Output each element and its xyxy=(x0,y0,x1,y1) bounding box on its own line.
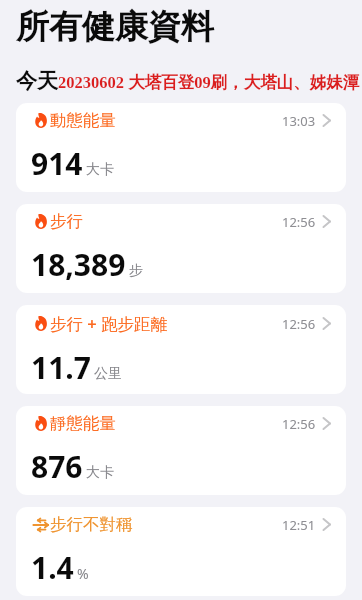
button[interactable]: 步行 xyxy=(16,204,346,293)
staticText: 步行不對稱 xyxy=(50,514,133,535)
button[interactable]: 步行 + 跑步距離 xyxy=(16,305,346,394)
staticText: 公里 xyxy=(94,365,122,383)
staticText: 大卡 xyxy=(86,464,114,482)
staticText: 20230602 大塔百登09刷，大塔山、姊妹潭 xyxy=(58,72,360,93)
staticText: 12:56 xyxy=(282,415,316,433)
button[interactable]: 動態能量 xyxy=(16,103,346,192)
staticText: 18,389 xyxy=(31,244,126,285)
staticText: 今天 xyxy=(16,68,58,94)
staticText: 動態能量 xyxy=(50,110,116,131)
staticText: 大卡 xyxy=(86,161,114,179)
staticText: 914 xyxy=(31,143,83,184)
staticText: 12:56 xyxy=(282,315,316,333)
button[interactable]: 步行不對稱 xyxy=(16,507,346,596)
staticText: 11.7 xyxy=(31,347,91,388)
staticText: 12:51 xyxy=(282,516,316,534)
button[interactable]: 靜態能量 xyxy=(16,406,346,495)
staticText: 步行 + 跑步距離 xyxy=(50,312,168,335)
staticText: 876 xyxy=(31,446,83,487)
staticText: 13:03 xyxy=(282,112,316,130)
staticText: 步 xyxy=(129,262,143,280)
staticText: 12:56 xyxy=(282,213,316,231)
staticText: 1.4 xyxy=(31,547,74,588)
staticText: % xyxy=(77,564,89,583)
staticText: 步行 xyxy=(50,211,83,232)
staticText: 所有健康資料 xyxy=(16,6,214,48)
staticText: 靜態能量 xyxy=(50,413,116,434)
